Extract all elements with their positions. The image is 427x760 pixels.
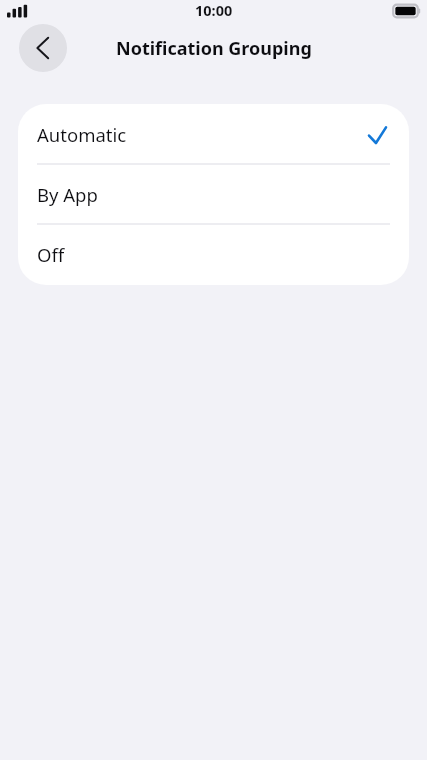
- staticText: By App: [37, 182, 98, 207]
- staticText: Automatic: [37, 122, 127, 147]
- button[interactable]: Back: [19, 24, 67, 72]
- button[interactable]: By App: [18, 164, 409, 224]
- button[interactable]: Off: [18, 224, 409, 284]
- button[interactable]: Automatic: [18, 104, 409, 164]
- staticText: Off: [37, 242, 65, 267]
- staticText: Notification Grouping: [116, 36, 312, 61]
- staticText: 10:00: [195, 0, 233, 20]
